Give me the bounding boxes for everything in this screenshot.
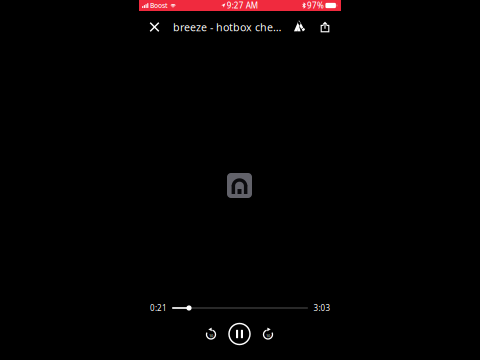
staticText: 10 [266,333,270,338]
button[interactable]: Close [140,12,168,42]
button[interactable]: breeze - hotbox che… [173,12,293,42]
button[interactable]: Rewind 10 seconds [198,321,224,347]
button[interactable]: Share [313,12,337,42]
staticText: breeze - hotbox che… [173,20,281,34]
staticText: Boost [150,1,168,10]
button[interactable]: Forward 10 seconds [255,321,281,347]
staticText: 10 [209,333,213,338]
staticText: 3:03 [313,303,330,313]
staticText: 9:27 AM [227,0,258,11]
staticText: 0:21 [150,303,167,313]
button[interactable]: Pause [225,320,253,348]
staticText: 97% [307,0,324,11]
button[interactable]: Open in Drive [287,11,311,41]
